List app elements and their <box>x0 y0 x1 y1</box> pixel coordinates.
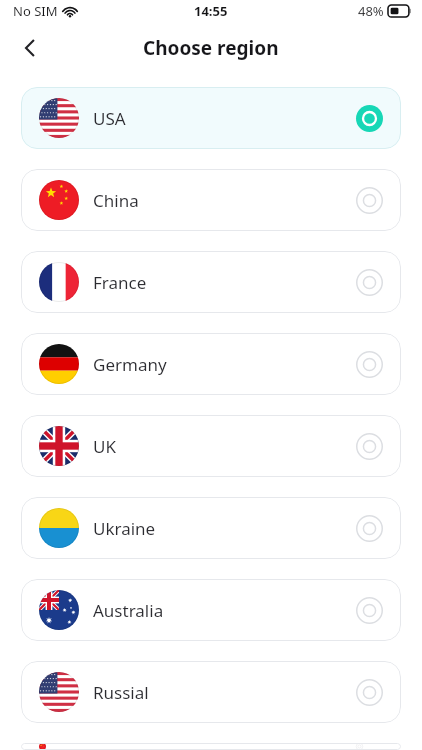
button[interactable]: USA <box>21 87 401 149</box>
staticText: China <box>93 189 139 212</box>
staticText: Russial <box>93 681 149 704</box>
button[interactable]: Extra <box>21 743 401 750</box>
staticText: Germany <box>93 353 167 376</box>
button[interactable]: UK <box>21 415 401 477</box>
staticText: Choose region <box>143 35 279 61</box>
button[interactable]: Australia <box>21 579 401 641</box>
staticText: USA <box>93 107 126 130</box>
staticText: 48% <box>358 2 384 20</box>
staticText: France <box>93 271 147 294</box>
staticText: UK <box>93 435 116 458</box>
button[interactable]: Ukraine <box>21 497 401 559</box>
staticText: No SIM <box>13 2 58 20</box>
button[interactable]: Russial <box>21 661 401 723</box>
staticText: Ukraine <box>93 517 156 540</box>
staticText: 14:55 <box>194 2 228 20</box>
button[interactable]: Germany <box>21 333 401 395</box>
button[interactable]: China <box>21 169 401 231</box>
staticText: Australia <box>93 599 164 622</box>
staticText: Extra <box>93 743 134 750</box>
button[interactable]: Back <box>8 26 52 70</box>
button[interactable]: France <box>21 251 401 313</box>
